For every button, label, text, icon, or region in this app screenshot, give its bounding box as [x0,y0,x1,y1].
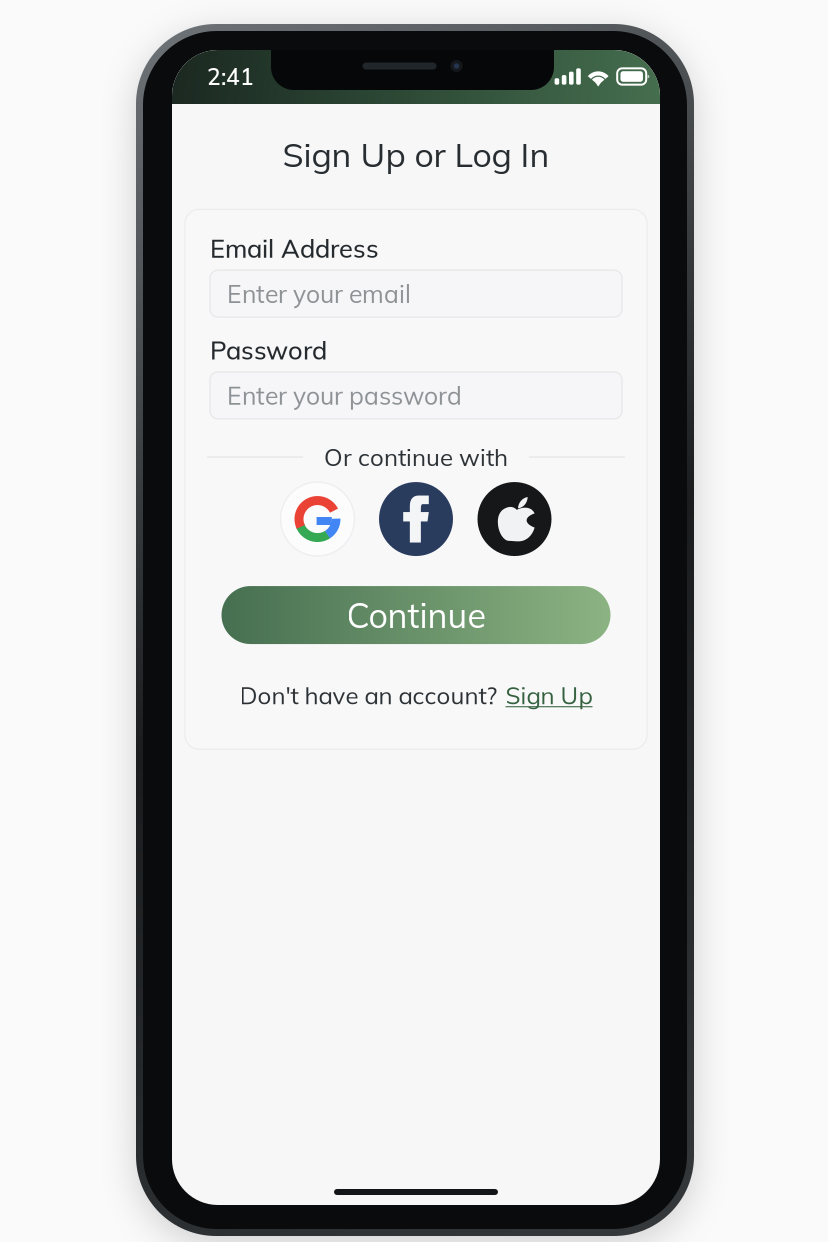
staticText: Password [210,334,327,366]
staticText: 2:41 [207,62,254,91]
button[interactable]: Enter your email [210,270,622,317]
button[interactable]: Enter your password [210,372,622,419]
staticText: Enter your password [227,380,462,411]
button[interactable]: Continue with Facebook [379,482,453,556]
staticText: Email Address [210,232,379,264]
staticText: Don't have an account? [239,680,497,710]
button[interactable]: Continue with Google [280,482,354,556]
button[interactable]: Continue [221,586,610,644]
staticText: Enter your email [227,278,411,309]
staticText: Sign Up [505,680,592,710]
staticText: Continue [346,594,485,636]
button[interactable]: Don't have an account? [239,680,592,710]
button[interactable]: Continue with Apple [477,482,551,556]
staticText: Or continue with [324,442,508,472]
staticText: Sign Up or Log In [282,133,549,175]
